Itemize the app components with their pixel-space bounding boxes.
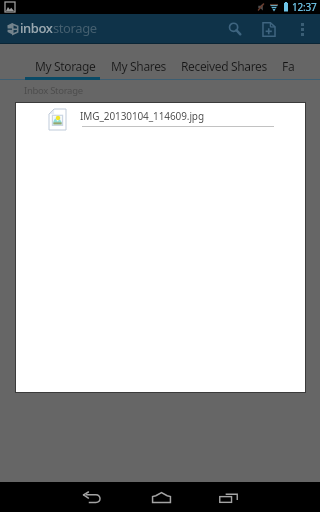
button[interactable]: IMG_20130104_114609.jpg	[16, 103, 305, 135]
staticText: IMG_20130104_114609.jpg	[80, 109, 204, 123]
button[interactable]: Search	[219, 14, 250, 44]
button[interactable]: More options	[290, 14, 314, 44]
staticText: 12:37	[292, 0, 317, 14]
staticText: Received Shares	[181, 58, 267, 74]
button[interactable]: Back	[68, 482, 116, 512]
staticText: inbox	[20, 19, 53, 37]
staticText: storage	[53, 19, 97, 37]
button[interactable]: Recents	[204, 482, 252, 512]
button[interactable]: Home	[137, 482, 185, 512]
button[interactable]: New document	[253, 14, 284, 44]
button[interactable]	[25, 44, 100, 79]
staticText: My Storage	[35, 58, 96, 74]
button[interactable]	[101, 44, 171, 79]
staticText: Inbox Storage	[24, 84, 83, 97]
staticText: My Shares	[111, 58, 166, 74]
button[interactable]	[172, 44, 288, 79]
button[interactable]	[276, 44, 316, 79]
staticText: Fa	[282, 58, 295, 74]
